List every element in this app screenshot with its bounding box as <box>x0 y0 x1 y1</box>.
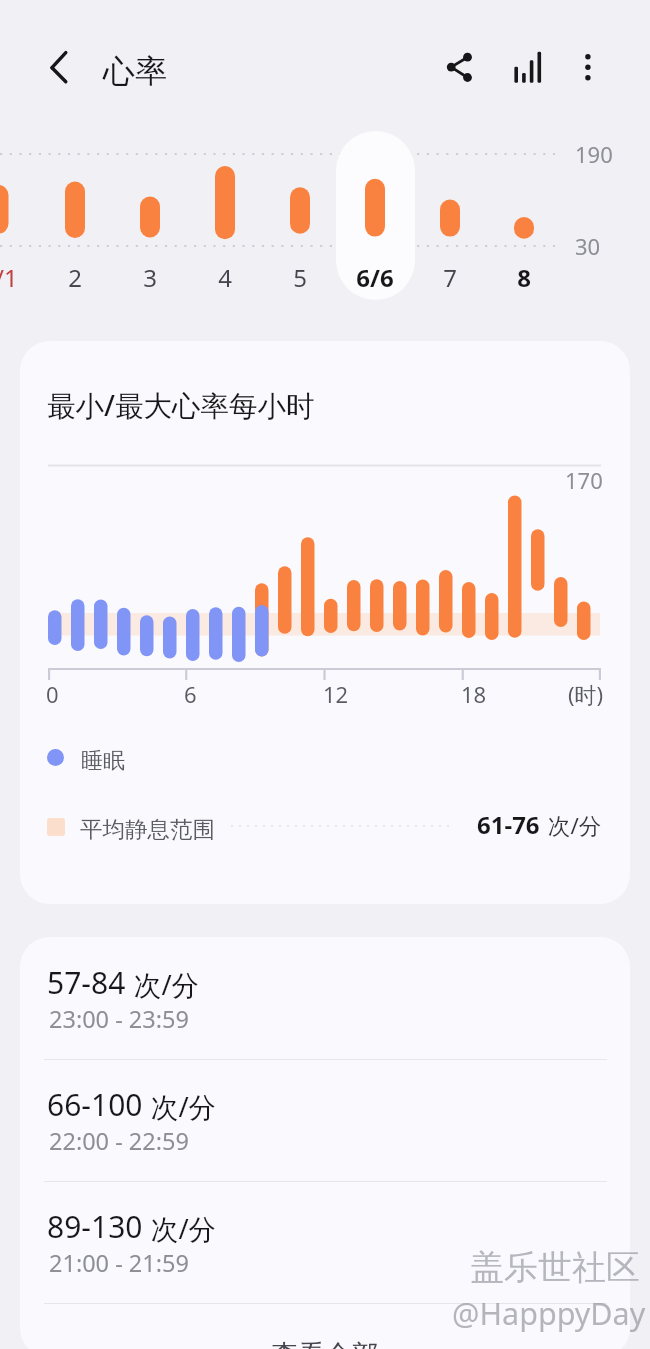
staticText: 61-76 <box>477 808 540 841</box>
staticText: (时) <box>568 679 604 709</box>
staticText: 12 <box>323 679 349 709</box>
button[interactable]: Back <box>33 44 85 96</box>
staticText: 次/分 <box>548 810 602 841</box>
staticText: 查看全部 <box>271 1338 379 1349</box>
button[interactable]: Share <box>434 44 486 96</box>
staticText: 6/6 <box>356 261 394 294</box>
staticText: 平均静息范围 <box>80 815 215 843</box>
staticText: 18 <box>461 679 487 709</box>
staticText: 89-130 <box>47 1206 143 1247</box>
staticText: 2 <box>68 261 82 294</box>
staticText: 4 <box>218 261 232 294</box>
button[interactable]: 查看全部 <box>20 1304 630 1349</box>
staticText: 6 <box>184 679 197 709</box>
button[interactable] <box>20 1181 630 1303</box>
staticText: 8 <box>517 261 531 294</box>
staticText: 心率 <box>103 51 167 91</box>
staticText: 66-100 <box>47 1084 143 1125</box>
staticText: 30 <box>575 231 601 261</box>
staticText: 次/分 <box>151 1088 217 1126</box>
button[interactable] <box>336 131 415 300</box>
staticText: 170 <box>565 465 603 495</box>
staticText: 0 <box>46 679 59 709</box>
staticText: 3 <box>143 261 157 294</box>
staticText: 57-84 <box>47 962 126 1003</box>
button[interactable]: Statistics <box>500 44 552 96</box>
staticText: 23:00 - 23:59 <box>49 1003 189 1035</box>
staticText: 盖乐世社区 <box>470 1246 640 1289</box>
staticText: 21:00 - 21:59 <box>49 1247 189 1279</box>
button[interactable] <box>20 1059 630 1181</box>
staticText: @HapppyDay <box>452 1292 646 1334</box>
button[interactable]: More options <box>562 44 614 96</box>
staticText: 6/1 <box>0 261 18 294</box>
staticText: 次/分 <box>134 966 200 1004</box>
button[interactable] <box>20 937 630 1059</box>
staticText: 睡眠 <box>81 747 125 775</box>
staticText: 7 <box>443 261 457 294</box>
staticText: 190 <box>575 139 613 169</box>
staticText: 5 <box>293 261 307 294</box>
staticText: 次/分 <box>151 1210 217 1248</box>
staticText: 最小/最大心率每小时 <box>47 386 315 425</box>
staticText: 22:00 - 22:59 <box>49 1125 189 1157</box>
